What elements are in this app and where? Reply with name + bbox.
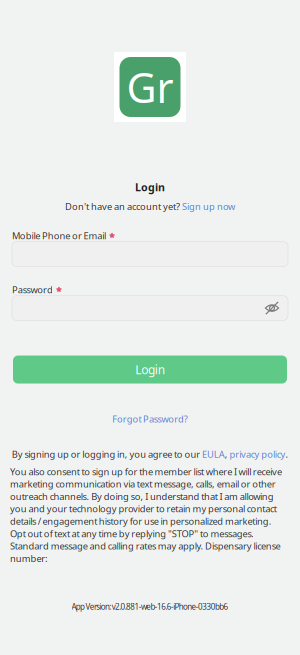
button[interactable]: Show password	[261, 297, 283, 319]
staticText: Sign up now	[182, 200, 235, 213]
staticText: .	[285, 448, 288, 460]
staticText: number:	[10, 552, 48, 564]
staticText: Gr	[126, 60, 173, 114]
staticText: Opt out of text at any time by replying …	[10, 527, 254, 540]
staticText: Login	[135, 180, 165, 194]
staticText: App Version: v2.0.881-web-16.6-iPhone-03…	[71, 601, 228, 612]
staticText: privacy policy	[229, 448, 285, 460]
button[interactable]: Sign up now	[182, 200, 235, 213]
staticText: you and your technology provider to reta…	[10, 502, 277, 515]
button[interactable]: Login	[13, 356, 287, 384]
staticText: outreach channels. By doing so, I unders…	[10, 490, 274, 502]
staticText: Forgot Password?	[112, 413, 188, 425]
staticText: You also consent to sign up for the memb…	[10, 465, 282, 478]
staticText: marketing communication via text message…	[10, 478, 276, 490]
staticText: Don't have an account yet?	[65, 200, 180, 213]
staticText: Standard message and calling rates may a…	[10, 540, 280, 552]
button[interactable]: Forgot Password?	[112, 413, 188, 425]
staticText: EULA	[202, 448, 225, 460]
staticText: ,	[225, 448, 229, 460]
staticText: Login	[135, 362, 165, 377]
staticText: details / engagement history for use in …	[10, 515, 272, 527]
button[interactable]: privacy policy	[229, 448, 285, 460]
staticText: Password	[12, 283, 53, 296]
staticText: By signing up or logging in, you agree t…	[10, 448, 202, 460]
staticText: Mobile Phone or Email	[12, 229, 106, 242]
button[interactable]: EULA	[202, 448, 225, 460]
